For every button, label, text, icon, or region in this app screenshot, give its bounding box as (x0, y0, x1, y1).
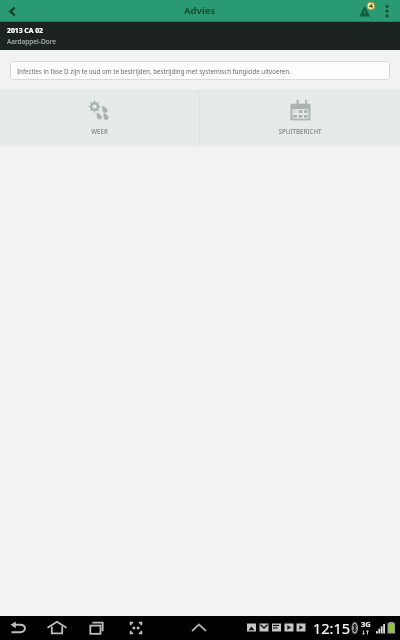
staticText: Infecties in fase D zijn te oud om te be… (17, 67, 291, 75)
staticText: SPUITBERICHT (278, 127, 322, 135)
button[interactable]: Back (0, 0, 24, 22)
staticText: Advies (184, 4, 216, 17)
button[interactable]: WEER (0, 91, 199, 146)
staticText: 3G (361, 619, 371, 629)
button[interactable]: More options (379, 0, 395, 22)
button[interactable]: SPUITBERICHT (200, 91, 400, 146)
staticText: 2013 CA 02 (7, 26, 43, 35)
staticText: 12:15 (313, 618, 351, 638)
staticText: WEER (91, 127, 108, 135)
button[interactable]: Warnings (357, 0, 377, 22)
staticText: Aardappel-Dore (7, 37, 57, 46)
